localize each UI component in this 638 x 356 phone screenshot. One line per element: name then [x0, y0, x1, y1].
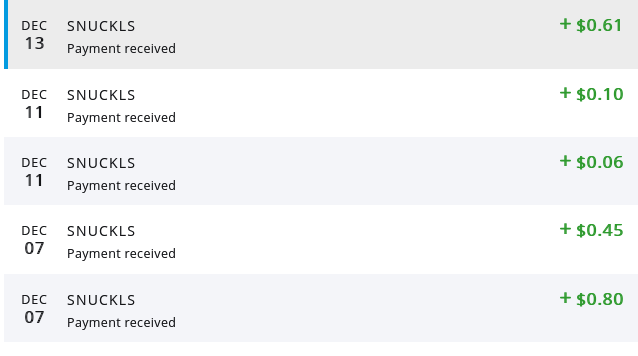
- staticText: DEC: [21, 291, 48, 308]
- staticText: Payment received: [67, 314, 177, 331]
- staticText: Payment received: [67, 245, 177, 262]
- staticText: + $0.45: [559, 214, 624, 243]
- button[interactable]: DEC 11 SNUCKLS Payment received + $0.10: [0, 69, 638, 137]
- staticText: SNUCKLS: [67, 290, 137, 309]
- staticText: SNUCKLS: [67, 153, 137, 172]
- staticText: 11: [24, 169, 45, 191]
- staticText: Payment received: [67, 245, 177, 262]
- staticText: DEC: [21, 222, 48, 239]
- staticText: 13: [25, 32, 46, 54]
- button[interactable]: DEC 13 SNUCKLS Payment received + $0.61: [0, 0, 638, 69]
- button[interactable]: DEC 07 SNUCKLS Payment received + $0.80: [0, 274, 638, 342]
- staticText: + $0.80: [560, 283, 625, 312]
- staticText: + $0.45: [560, 214, 625, 243]
- button[interactable]: DEC 11 SNUCKLS Payment received + $0.06: [0, 137, 638, 205]
- staticText: 07: [25, 306, 46, 328]
- staticText: + $0.10: [560, 78, 625, 107]
- staticText: SNUCKLS: [67, 153, 137, 172]
- staticText: DEC: [21, 86, 48, 103]
- staticText: DEC: [21, 291, 48, 308]
- staticText: SNUCKLS: [67, 290, 137, 309]
- staticText: 11: [24, 101, 45, 123]
- staticText: DEC: [21, 86, 48, 103]
- staticText: 13: [24, 32, 45, 54]
- staticText: SNUCKLS: [67, 85, 137, 104]
- staticText: + $0.06: [559, 146, 624, 175]
- staticText: + $0.06: [560, 146, 625, 175]
- staticText: Payment received: [67, 109, 177, 126]
- staticText: 11: [25, 101, 46, 123]
- button[interactable]: DEC 07 SNUCKLS Payment received + $0.45: [0, 205, 638, 274]
- staticText: Payment received: [67, 40, 177, 57]
- staticText: SNUCKLS: [67, 221, 137, 240]
- staticText: 11: [25, 169, 46, 191]
- staticText: Payment received: [67, 177, 177, 194]
- staticText: Payment received: [67, 109, 177, 126]
- staticText: Payment received: [67, 314, 177, 331]
- staticText: + $0.61: [560, 9, 625, 38]
- staticText: Payment received: [67, 177, 177, 194]
- staticText: DEC: [21, 154, 48, 171]
- staticText: 07: [24, 237, 45, 259]
- staticText: SNUCKLS: [67, 85, 137, 104]
- staticText: DEC: [21, 17, 48, 34]
- staticText: SNUCKLS: [67, 16, 137, 35]
- staticText: + $0.80: [559, 283, 624, 312]
- staticText: SNUCKLS: [67, 221, 137, 240]
- staticText: SNUCKLS: [67, 16, 137, 35]
- staticText: DEC: [21, 222, 48, 239]
- staticText: DEC: [21, 17, 48, 34]
- staticText: + $0.61: [559, 9, 624, 38]
- staticText: 07: [25, 237, 46, 259]
- staticText: 07: [24, 306, 45, 328]
- staticText: + $0.10: [559, 78, 624, 107]
- staticText: DEC: [21, 154, 48, 171]
- staticText: Payment received: [67, 40, 177, 57]
